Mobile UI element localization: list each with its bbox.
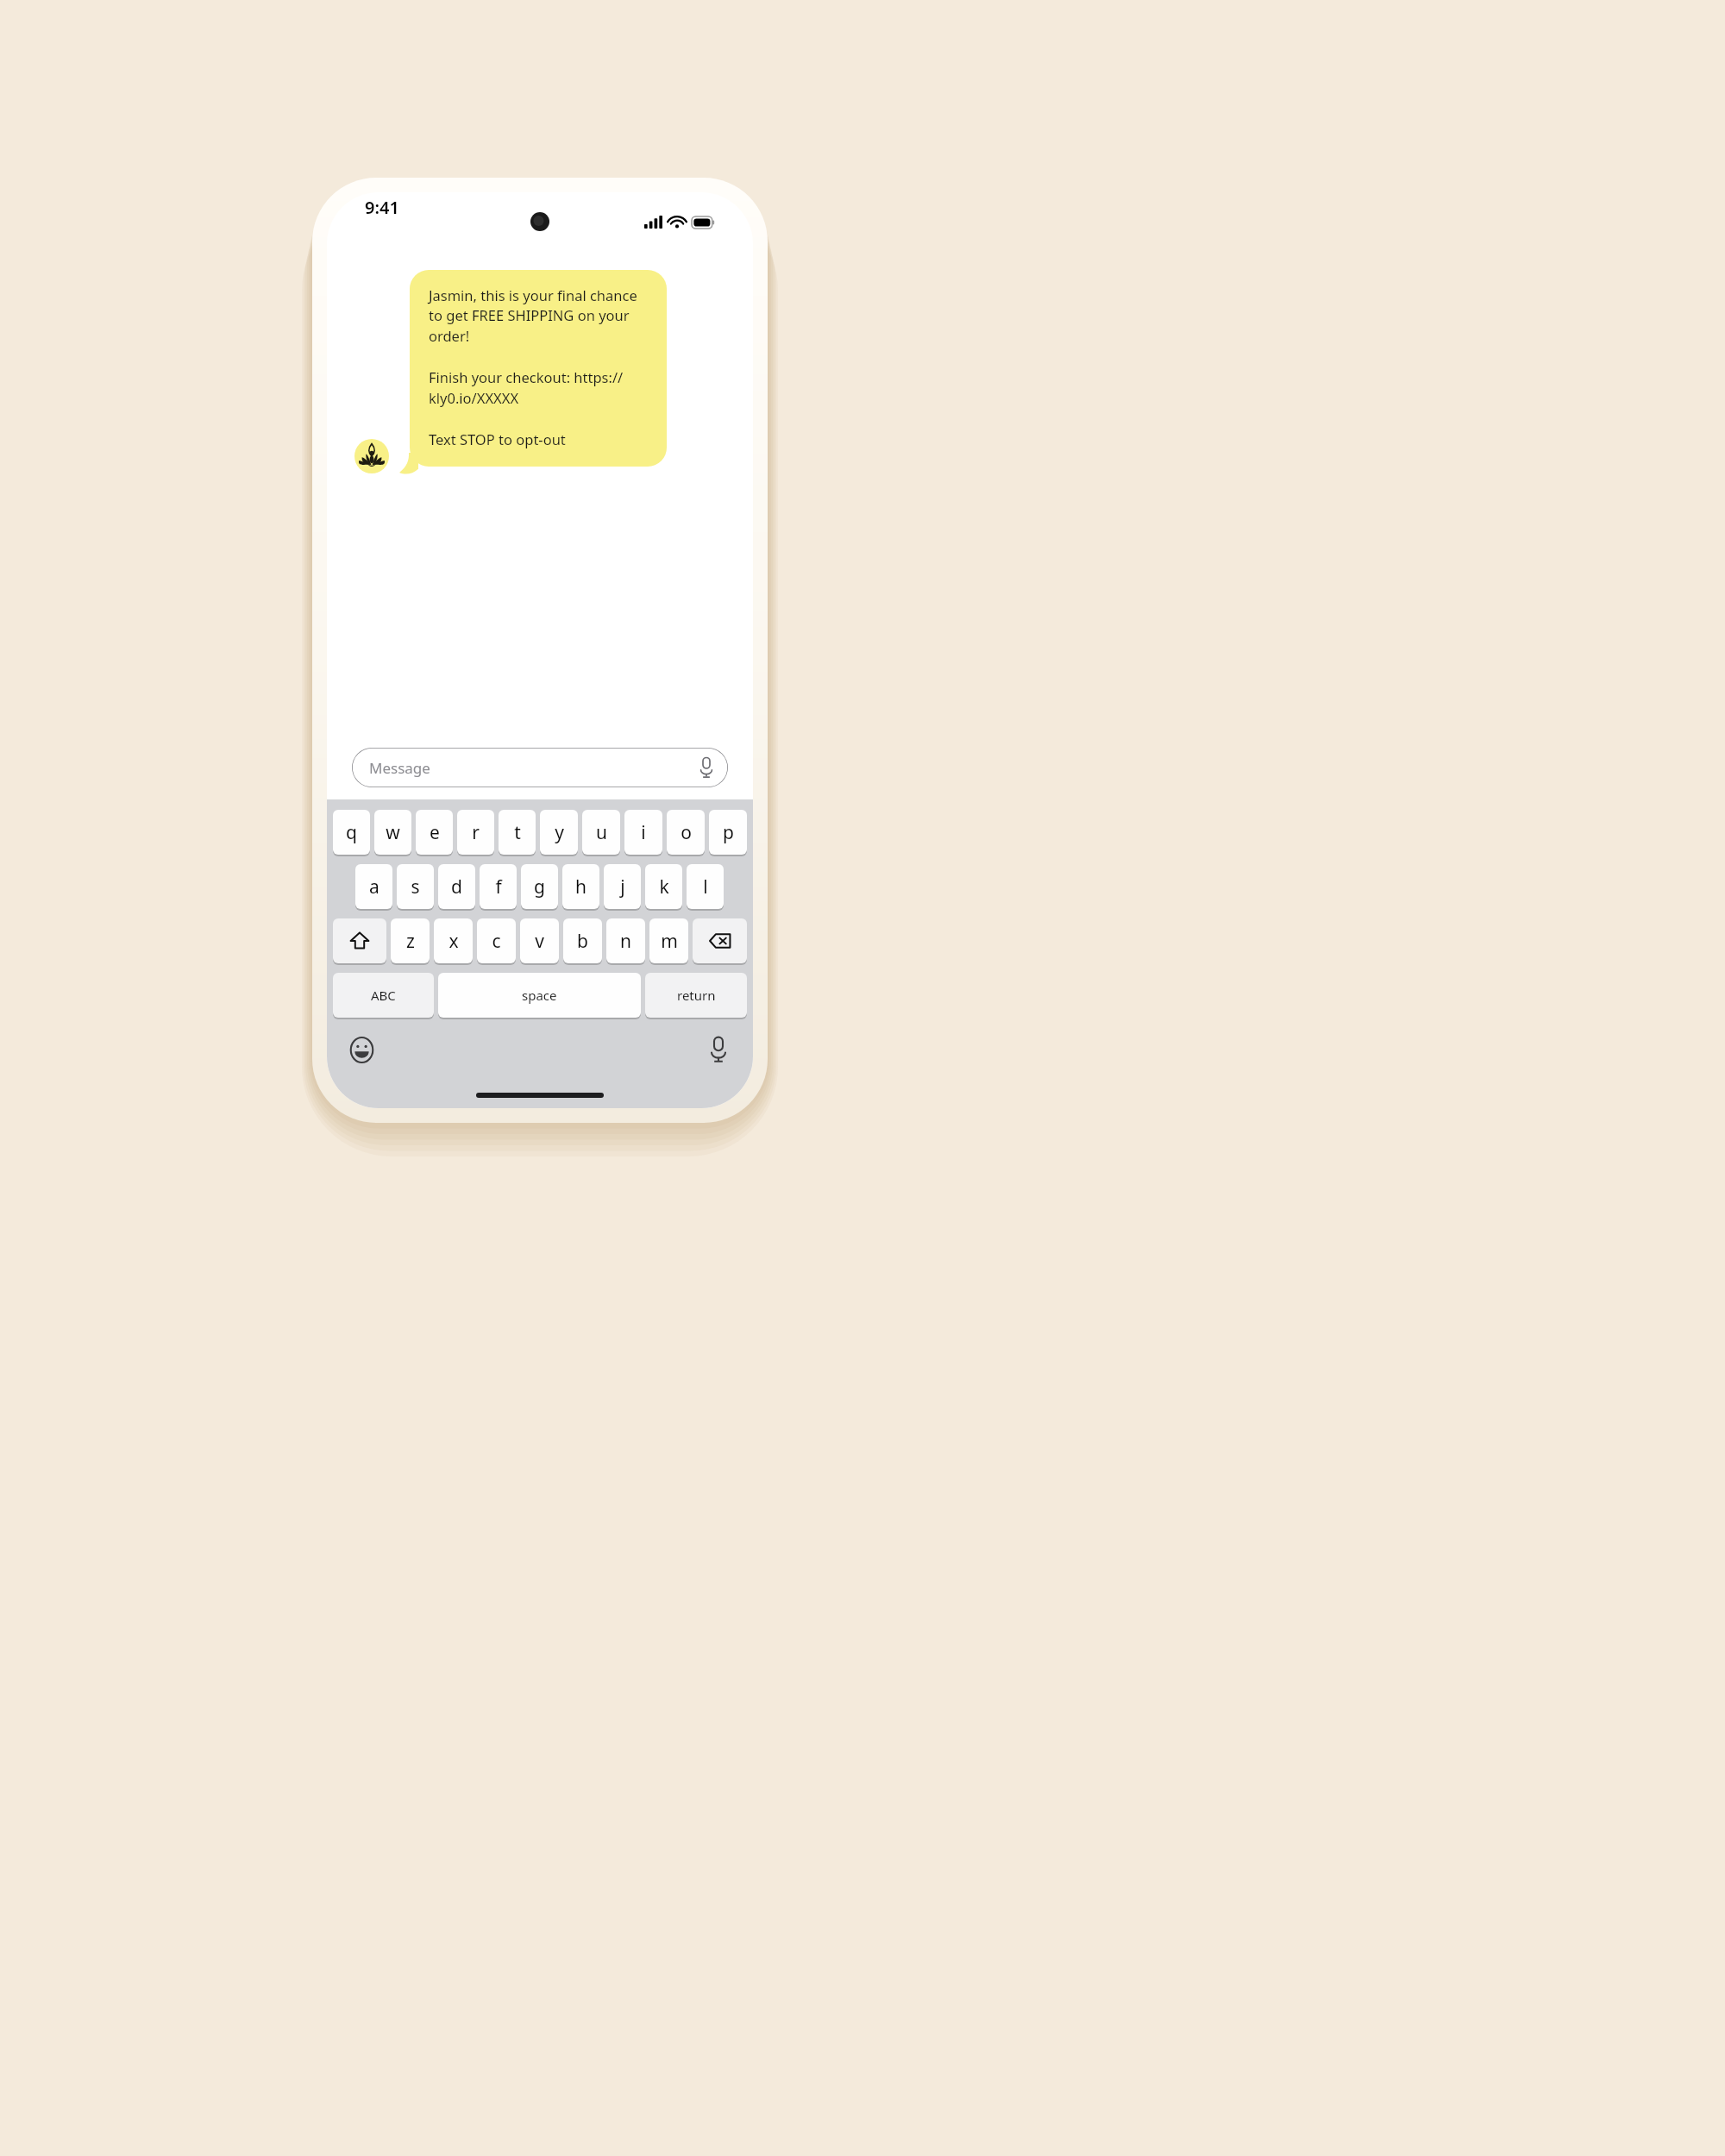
staticText: f: [495, 874, 502, 899]
staticText: h: [575, 874, 586, 899]
button[interactable]: k: [645, 864, 682, 909]
button[interactable]: return: [645, 973, 747, 1018]
button[interactable]: w: [374, 810, 411, 855]
staticText: e: [430, 820, 440, 845]
staticText: j: [620, 874, 625, 899]
staticText: p: [723, 820, 734, 845]
button[interactable]: y: [540, 810, 578, 855]
button[interactable]: Backspace: [693, 918, 747, 963]
staticText: o: [681, 820, 692, 845]
staticText: d: [451, 874, 462, 899]
button[interactable]: c: [477, 918, 516, 963]
staticText: l: [703, 874, 708, 899]
button[interactable]: ABC: [333, 973, 434, 1018]
button[interactable]: n: [606, 918, 645, 963]
button[interactable]: h: [562, 864, 599, 909]
button[interactable]: e: [416, 810, 453, 855]
staticText: Message: [369, 758, 430, 778]
staticText: w: [386, 820, 400, 845]
staticText: q: [346, 820, 357, 845]
other: Voice input: [699, 757, 713, 778]
button[interactable]: s: [397, 864, 434, 909]
button[interactable]: p: [709, 810, 747, 855]
button[interactable]: g: [521, 864, 558, 909]
staticText: n: [620, 929, 631, 954]
staticText: 9:41: [365, 196, 399, 219]
button[interactable]: q: [333, 810, 370, 855]
staticText: m: [661, 929, 678, 954]
button[interactable]: space: [438, 973, 641, 1018]
button[interactable]: u: [582, 810, 620, 855]
button[interactable]: m: [649, 918, 688, 963]
button[interactable]: l: [687, 864, 724, 909]
button[interactable]: t: [499, 810, 536, 855]
staticText: t: [514, 820, 521, 845]
button[interactable]: z: [391, 918, 430, 963]
button[interactable]: x: [434, 918, 473, 963]
staticText: g: [534, 874, 545, 899]
button[interactable]: Emoji keyboard: [342, 1031, 380, 1069]
staticText: s: [411, 874, 420, 899]
staticText: x: [448, 929, 459, 954]
staticText: r: [472, 820, 480, 845]
staticText: y: [555, 820, 564, 845]
staticText: return: [677, 987, 716, 1004]
button[interactable]: j: [604, 864, 641, 909]
button[interactable]: a: [355, 864, 392, 909]
staticText: k: [659, 874, 669, 899]
button[interactable]: v: [520, 918, 559, 963]
staticText: c: [492, 929, 501, 954]
staticText: v: [535, 929, 544, 954]
staticText: z: [406, 929, 415, 954]
button[interactable]: Dictation: [699, 1031, 737, 1069]
button[interactable]: Shift: [333, 918, 386, 963]
button[interactable]: b: [563, 918, 602, 963]
button[interactable]: Jasmin, this is your final chance to get…: [410, 270, 667, 467]
staticText: u: [596, 820, 607, 845]
button[interactable]: Message: [352, 748, 728, 787]
button[interactable]: o: [667, 810, 705, 855]
staticText: b: [577, 929, 588, 954]
button[interactable]: d: [438, 864, 475, 909]
staticText: a: [369, 874, 379, 899]
button[interactable]: Sender avatar: [354, 439, 389, 473]
staticText: Jasmin, this is your final chance to get…: [429, 285, 649, 449]
staticText: space: [522, 987, 557, 1004]
staticText: ABC: [371, 987, 396, 1004]
button[interactable]: i: [624, 810, 662, 855]
staticText: i: [641, 820, 646, 845]
button[interactable]: r: [457, 810, 494, 855]
button[interactable]: f: [480, 864, 517, 909]
